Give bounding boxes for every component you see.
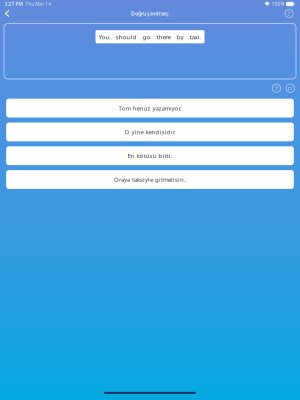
- staticText: Thu Mar 14: [25, 1, 51, 7]
- button[interactable]: Tom henüz yazamıyor.: [6, 99, 294, 117]
- staticText: O yine kendisidir.: [124, 128, 175, 136]
- button[interactable]: Report a problem: [286, 84, 294, 92]
- staticText: 100%: [271, 1, 284, 7]
- button[interactable]: Help: [282, 8, 298, 19]
- button[interactable]: Back: [1, 8, 15, 19]
- button[interactable]: O yine kendisidir.: [6, 122, 294, 141]
- staticText: ?: [288, 9, 291, 18]
- staticText: ?: [275, 84, 278, 93]
- staticText: You should go there by taxi.: [98, 33, 201, 41]
- staticText: 3:27 PM: [4, 1, 22, 7]
- staticText: Tom henüz yazamıyor.: [118, 104, 181, 112]
- button[interactable]: En kötüsü bitti.: [6, 146, 294, 165]
- button[interactable]: Oraya taksiyle gitmelisin.: [6, 170, 294, 189]
- staticText: En kötüsü bitti.: [127, 152, 172, 160]
- button[interactable]: Hint: [272, 84, 281, 92]
- staticText: Doğru çeviri seç: [131, 10, 169, 17]
- staticText: Oraya taksiyle gitmelisin.: [114, 175, 186, 183]
